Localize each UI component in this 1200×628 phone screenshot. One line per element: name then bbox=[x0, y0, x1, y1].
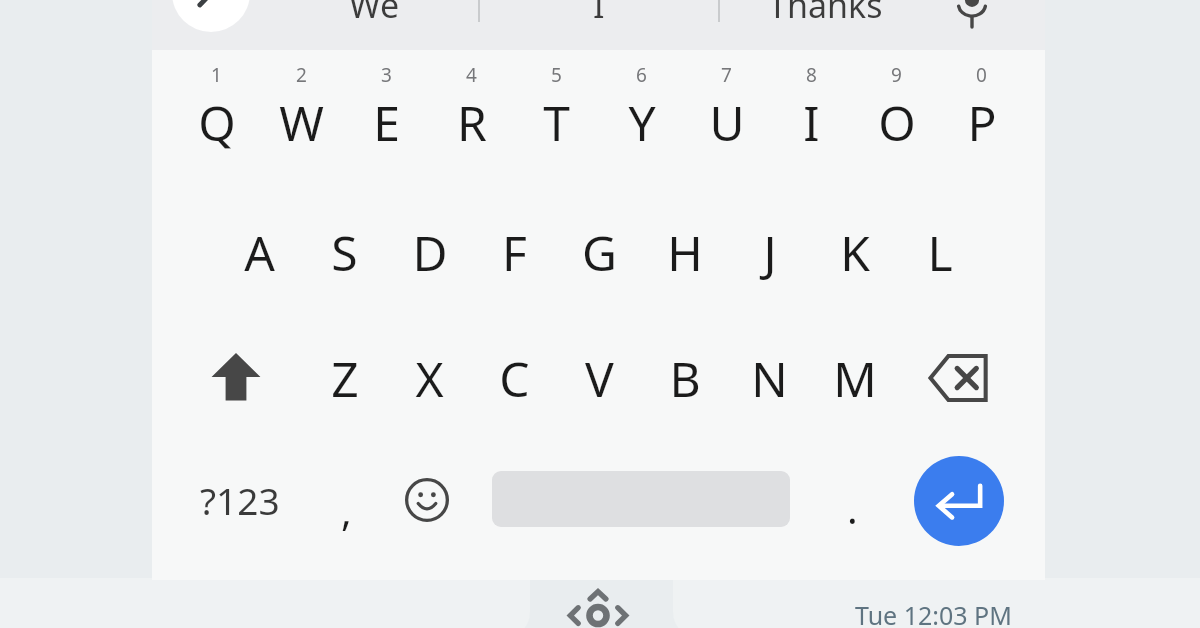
button[interactable]: 2 bbox=[259, 54, 344, 172]
button[interactable]: 9 bbox=[854, 54, 939, 172]
button[interactable]: Voice input bbox=[936, 0, 1008, 42]
staticText: I bbox=[803, 90, 820, 155]
button[interactable]: 7 bbox=[684, 54, 769, 172]
button[interactable]: D bbox=[387, 193, 472, 311]
staticText: . bbox=[847, 481, 858, 535]
staticText: 6 bbox=[599, 62, 684, 84]
button[interactable]: 5 bbox=[514, 54, 599, 172]
staticText: We bbox=[349, 0, 400, 28]
staticText: B bbox=[669, 346, 701, 411]
staticText: , bbox=[341, 483, 352, 537]
button[interactable]: V bbox=[557, 319, 642, 437]
staticText: M bbox=[833, 346, 877, 411]
staticText: X bbox=[415, 346, 444, 411]
staticText: 1 bbox=[174, 62, 259, 84]
staticText: C bbox=[499, 346, 530, 411]
staticText: Z bbox=[331, 346, 359, 411]
button[interactable]: 1 bbox=[174, 54, 259, 172]
button[interactable]: ?123 bbox=[192, 452, 288, 548]
staticText: 5 bbox=[514, 62, 599, 84]
button[interactable]: 3 bbox=[344, 54, 429, 172]
button[interactable]: L bbox=[897, 193, 982, 311]
button[interactable]: S bbox=[302, 193, 387, 311]
staticText: A bbox=[244, 220, 275, 285]
button[interactable]: . bbox=[812, 452, 892, 548]
staticText: 0 bbox=[939, 62, 1024, 84]
staticText: D bbox=[412, 220, 448, 285]
staticText: G bbox=[582, 220, 617, 285]
button[interactable]: Backspace bbox=[917, 322, 1001, 434]
button[interactable]: Move keyboard bbox=[558, 578, 638, 628]
button[interactable]: Handwriting bbox=[172, 0, 250, 32]
staticText: 2 bbox=[259, 62, 344, 84]
button[interactable]: 8 bbox=[769, 54, 854, 172]
button[interactable]: 6 bbox=[599, 54, 684, 172]
button[interactable]: K bbox=[812, 193, 897, 311]
button[interactable]: , bbox=[306, 452, 386, 548]
staticText: 9 bbox=[854, 62, 939, 84]
staticText: P bbox=[967, 90, 997, 155]
staticText: 4 bbox=[429, 62, 514, 84]
staticText: O bbox=[878, 90, 916, 155]
button[interactable]: N bbox=[727, 319, 812, 437]
button[interactable]: Shift bbox=[194, 321, 278, 433]
staticText: N bbox=[751, 346, 788, 411]
staticText: V bbox=[585, 346, 614, 411]
staticText: L bbox=[927, 220, 953, 285]
button[interactable]: F bbox=[472, 193, 557, 311]
staticText: 3 bbox=[344, 62, 429, 84]
button[interactable]: 4 bbox=[429, 54, 514, 172]
staticText: J bbox=[763, 220, 777, 285]
button[interactable]: M bbox=[812, 319, 897, 437]
staticText: H bbox=[667, 220, 703, 285]
button[interactable]: Z bbox=[302, 319, 387, 437]
button[interactable]: I bbox=[480, 0, 718, 32]
button[interactable]: H bbox=[642, 193, 727, 311]
staticText: T bbox=[543, 90, 570, 155]
staticText: Thanks bbox=[768, 0, 883, 28]
staticText: K bbox=[840, 220, 870, 285]
button[interactable]: 0 bbox=[939, 54, 1024, 172]
button[interactable]: A bbox=[217, 193, 302, 311]
button[interactable]: Thanks bbox=[720, 0, 930, 32]
staticText: E bbox=[373, 90, 400, 155]
staticText: R bbox=[457, 90, 487, 155]
button[interactable]: J bbox=[727, 193, 812, 311]
button[interactable]: B bbox=[642, 319, 727, 437]
button[interactable]: G bbox=[557, 193, 642, 311]
button[interactable]: Enter bbox=[914, 456, 1004, 546]
button[interactable]: C bbox=[472, 319, 557, 437]
staticText: 8 bbox=[769, 62, 854, 84]
staticText: Q bbox=[198, 90, 236, 155]
staticText: 7 bbox=[684, 62, 769, 84]
button[interactable]: Emoji bbox=[385, 450, 469, 550]
staticText: S bbox=[331, 220, 358, 285]
staticText: U bbox=[709, 90, 745, 155]
staticText: I bbox=[593, 0, 605, 28]
button[interactable]: We bbox=[270, 0, 478, 32]
staticText: Tue 12:03 PM bbox=[855, 598, 1012, 628]
staticText: W bbox=[279, 90, 324, 155]
staticText: F bbox=[502, 220, 527, 285]
staticText: ?123 bbox=[200, 475, 280, 525]
button[interactable]: X bbox=[387, 319, 472, 437]
staticText: Y bbox=[628, 90, 656, 155]
